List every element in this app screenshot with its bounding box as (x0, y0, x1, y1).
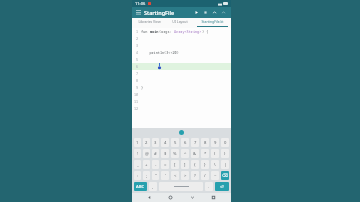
staticText: , (152, 184, 154, 190)
staticText: println(3<<20) (141, 50, 179, 55)
staticText: UI Layout (172, 19, 188, 24)
staticText: 5 (136, 57, 139, 62)
button[interactable]: Space (159, 182, 203, 191)
staticText: ' (165, 173, 166, 179)
button[interactable]: Stop (201, 8, 210, 17)
button[interactable]: Voice input (179, 130, 184, 135)
button[interactable]: Undo (210, 8, 219, 17)
button[interactable]: ⌫ (221, 171, 229, 180)
button[interactable]: } (201, 160, 209, 169)
staticText: Libraries View (138, 19, 161, 24)
staticText: @ (145, 151, 149, 157)
staticText: ! (137, 151, 139, 157)
staticText: * (204, 151, 207, 157)
staticText: - (155, 162, 157, 168)
button[interactable]: Libraries View (132, 18, 166, 28)
button[interactable]: Run (192, 8, 201, 17)
staticText: (args: (159, 29, 174, 34)
staticText: + (145, 162, 148, 168)
button[interactable]: 6 (181, 138, 189, 147)
button[interactable]: * (201, 149, 209, 158)
staticText: StartingFile.kt (201, 19, 224, 24)
button[interactable]: 3 (152, 138, 159, 147)
button[interactable]: 9 (211, 138, 219, 147)
staticText: 6 (184, 140, 187, 146)
button[interactable]: + (143, 160, 150, 169)
button[interactable]: [ (171, 160, 179, 169)
button[interactable]: ? (191, 171, 199, 180)
button[interactable]: . (205, 182, 213, 191)
staticText: / (204, 173, 206, 179)
staticText: 3 (154, 140, 157, 146)
button[interactable]: StartingFile.kt (193, 18, 231, 28)
button[interactable]: @ (143, 149, 150, 158)
button[interactable]: & (191, 149, 199, 158)
staticText: 7 (194, 140, 197, 146)
button[interactable]: ABC (134, 182, 147, 191)
button[interactable]: Menu (135, 9, 142, 16)
button[interactable]: ! (134, 149, 141, 158)
button[interactable]: : (134, 171, 141, 180)
staticText: " (155, 173, 157, 179)
staticText: ^ (184, 151, 187, 157)
staticText: 12 (134, 106, 139, 111)
button[interactable]: $ (161, 149, 169, 158)
button[interactable]: ⏎ (215, 182, 229, 191)
button[interactable]: " (152, 171, 159, 180)
staticText: # (154, 151, 157, 157)
button[interactable]: - (152, 160, 159, 169)
button[interactable]: ; (143, 171, 150, 180)
button[interactable]: # (152, 149, 159, 158)
button[interactable]: Back (145, 193, 154, 202)
staticText: fun (141, 29, 150, 34)
button[interactable]: { (191, 160, 199, 169)
button[interactable]: 8 (201, 138, 209, 147)
staticText: _ (137, 162, 139, 168)
staticText: 11 (134, 99, 139, 104)
button[interactable]: ( (211, 149, 219, 158)
staticText: | (224, 162, 227, 168)
button[interactable]: UI Layout (166, 18, 193, 28)
button[interactable]: ~ (211, 171, 219, 180)
button[interactable]: \ (211, 160, 219, 169)
staticText: ⏎ (220, 184, 224, 189)
staticText: } (204, 162, 206, 168)
staticText: 2 (136, 36, 139, 41)
button[interactable]: _ (134, 160, 141, 169)
staticText: 4 (136, 50, 139, 55)
button[interactable]: < (171, 171, 179, 180)
staticText: \ (214, 162, 216, 168)
button[interactable]: Home (166, 193, 175, 202)
staticText: & (193, 151, 197, 157)
staticText: main (150, 29, 159, 34)
staticText: } (141, 85, 144, 90)
button[interactable]: | (221, 160, 229, 169)
button[interactable]: 2 (143, 138, 150, 147)
staticText: < (174, 173, 177, 179)
button[interactable]: 0 (221, 138, 229, 147)
button[interactable]: 5 (171, 138, 179, 147)
staticText: StartingFile (144, 9, 175, 16)
button[interactable]: ^ (181, 149, 189, 158)
button[interactable]: ] (181, 160, 189, 169)
staticText: 1 (136, 29, 139, 34)
button[interactable]: 7 (191, 138, 199, 147)
button[interactable]: Redo (219, 8, 228, 17)
staticText: 4 (164, 140, 167, 146)
button[interactable]: , (149, 182, 157, 191)
button[interactable]: Recents (209, 193, 218, 202)
staticText: 2 (145, 140, 148, 146)
button[interactable]: > (181, 171, 189, 180)
staticText: 1 (136, 140, 139, 146)
button[interactable]: Hide keyboard (188, 193, 197, 202)
button[interactable]: = (161, 160, 169, 169)
button[interactable]: ) (221, 149, 229, 158)
staticText: 3 (136, 43, 139, 48)
button[interactable]: 1 (134, 138, 141, 147)
staticText: Array<String> (174, 29, 202, 34)
staticText: 7 (136, 71, 139, 76)
button[interactable]: ' (161, 171, 169, 180)
button[interactable]: / (201, 171, 209, 180)
button[interactable]: 4 (161, 138, 169, 147)
button[interactable]: % (171, 149, 179, 158)
